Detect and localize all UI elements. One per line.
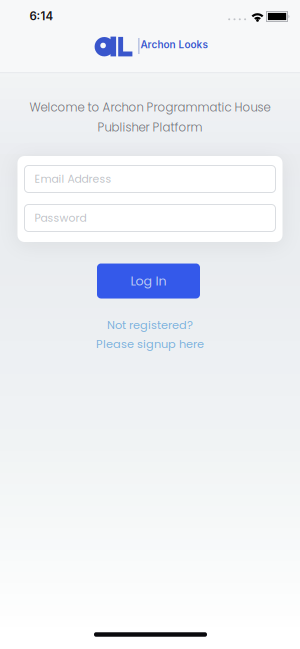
button[interactable]: Password — [24, 204, 275, 231]
staticText: Log In — [130, 272, 166, 290]
button[interactable]: Log In — [97, 263, 200, 298]
staticText: Please signup here — [96, 336, 204, 352]
staticText: Archon Looks — [140, 38, 207, 51]
staticText: Publisher Platform — [97, 119, 202, 136]
button[interactable]: Email Address — [24, 165, 275, 192]
staticText: Password — [34, 210, 86, 225]
staticText: 6:14 — [29, 9, 53, 23]
staticText: Email Address — [34, 171, 111, 186]
button[interactable]: Not registered? — [96, 317, 204, 352]
staticText: Welcome to Archon Programmatic House — [29, 99, 270, 116]
staticText: Not registered? — [107, 317, 193, 333]
